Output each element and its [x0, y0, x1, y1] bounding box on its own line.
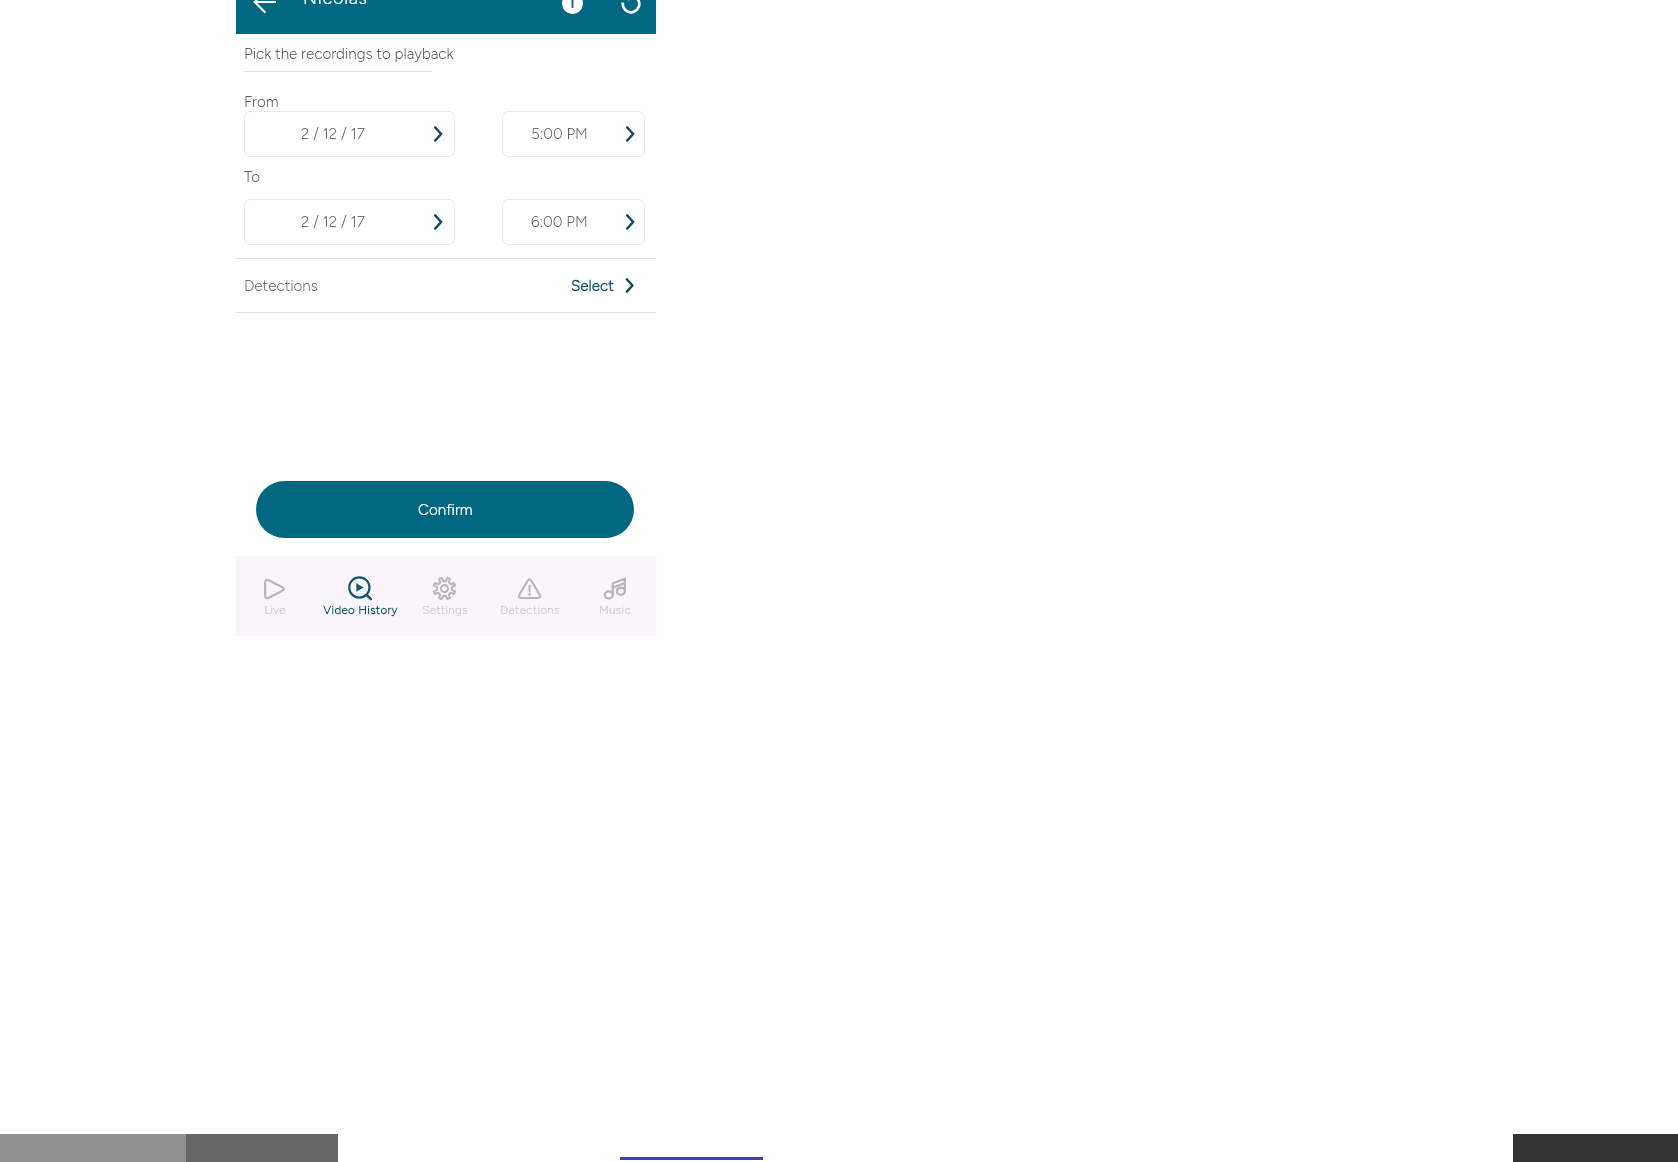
button[interactable]: 2 / 12 / 17	[244, 111, 455, 157]
staticText: Detections	[500, 603, 560, 617]
staticText: 6:00 PM	[531, 213, 588, 231]
staticText: 5:00 PM	[531, 125, 588, 143]
button[interactable]: Detections	[236, 259, 656, 312]
staticText: From	[244, 93, 279, 111]
staticText: Settings	[422, 603, 468, 617]
button[interactable]: 5:00 PM	[502, 111, 645, 157]
button[interactable]: Music	[572, 556, 657, 636]
staticText: Pick the recordings to playback	[244, 45, 454, 63]
button[interactable]: Settings	[402, 556, 487, 636]
staticText: 2 / 12 / 17	[301, 125, 365, 143]
button[interactable]: Back	[251, 0, 279, 16]
button[interactable]: 2 / 12 / 17	[244, 199, 455, 245]
staticText: Select	[571, 277, 614, 295]
staticText: Detections	[244, 277, 318, 295]
staticText: Confirm	[418, 501, 473, 519]
staticText: Music	[599, 603, 631, 617]
staticText: Video History	[323, 603, 398, 617]
staticText: Live	[264, 603, 286, 617]
button[interactable]: Detections	[487, 556, 572, 636]
button[interactable]: Refresh	[617, 0, 645, 18]
button[interactable]: Video History	[318, 556, 403, 636]
button[interactable]: 6:00 PM	[502, 199, 645, 245]
button[interactable]: Live	[232, 556, 317, 636]
button[interactable]: Confirm	[256, 481, 634, 538]
staticText: Nicolas	[303, 0, 368, 9]
staticText: 2 / 12 / 17	[301, 213, 365, 231]
button[interactable]: Info	[558, 0, 586, 17]
staticText: To	[244, 168, 261, 186]
